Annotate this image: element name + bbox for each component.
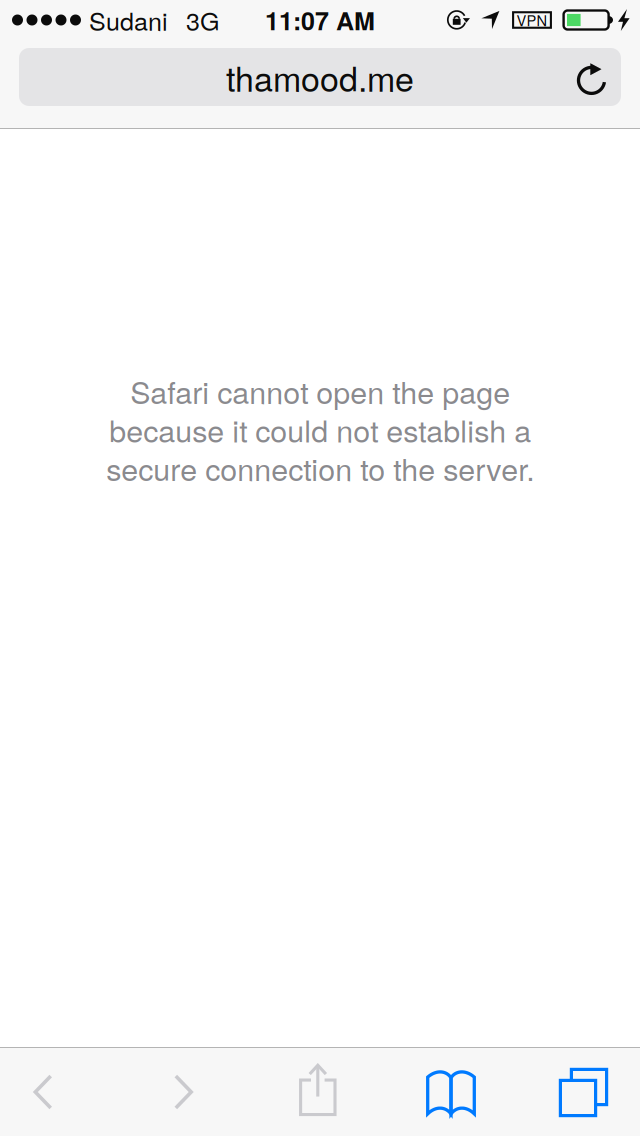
- button[interactable]: Bookmarks: [411, 1048, 491, 1136]
- button[interactable]: Forward: [143, 1048, 223, 1136]
- staticText: 11:07 AM: [265, 2, 375, 38]
- button[interactable]: Share: [278, 1048, 358, 1136]
- staticText: Sudani: [89, 2, 168, 38]
- button[interactable]: Reload: [568, 48, 614, 106]
- staticText: VPN: [516, 9, 547, 30]
- staticText: Safari cannot open the page because it c…: [106, 369, 534, 490]
- button[interactable]: thamood.me: [19, 48, 621, 106]
- staticText: 3G: [186, 2, 220, 38]
- button[interactable]: Tabs: [543, 1048, 623, 1136]
- staticText: thamood.me: [226, 53, 414, 101]
- button[interactable]: Back: [3, 1048, 83, 1136]
